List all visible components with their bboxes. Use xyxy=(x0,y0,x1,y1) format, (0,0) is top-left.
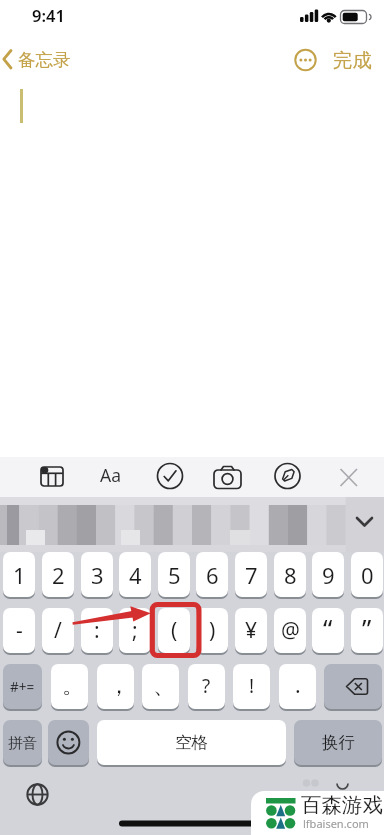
staticText: 空格 xyxy=(175,732,208,753)
staticText: “ xyxy=(323,610,333,645)
staticText: ; xyxy=(132,616,138,645)
button[interactable]: ¥ xyxy=(235,608,267,653)
button[interactable]: “ xyxy=(312,608,344,653)
staticText: 4 xyxy=(129,560,142,590)
staticText: - xyxy=(16,616,23,645)
staticText: @ xyxy=(281,616,300,645)
staticText: 百森游戏 xyxy=(301,792,383,818)
button[interactable] xyxy=(326,774,368,816)
staticText: : xyxy=(94,616,100,645)
staticText: 5 xyxy=(168,560,181,590)
button[interactable] xyxy=(148,457,192,497)
staticText: #+= xyxy=(10,678,35,696)
button[interactable] xyxy=(326,44,384,74)
button[interactable]: ; xyxy=(119,608,151,653)
staticText: ? xyxy=(202,673,211,699)
button[interactable] xyxy=(326,457,370,497)
button[interactable]: 3 xyxy=(81,552,113,597)
button[interactable]: 8 xyxy=(274,552,306,597)
button[interactable]: 拼音 xyxy=(3,720,42,765)
button[interactable]: 4 xyxy=(119,552,151,597)
staticText: 换行 xyxy=(322,732,355,753)
staticText: 拼音 xyxy=(8,734,37,752)
staticText: 。 xyxy=(62,672,84,700)
staticText: 3 xyxy=(91,560,104,590)
button[interactable]: ! xyxy=(233,664,270,709)
button[interactable]: 2 xyxy=(42,552,74,597)
button[interactable]: 空格 xyxy=(97,720,286,765)
staticText: 2 xyxy=(52,560,65,590)
staticText: / xyxy=(54,616,62,645)
button[interactable]: 0 xyxy=(351,552,383,597)
staticText: 7 xyxy=(245,560,258,590)
button[interactable] xyxy=(205,457,249,497)
button[interactable]: 。 xyxy=(51,664,88,709)
button[interactable]: ， xyxy=(97,664,134,709)
button[interactable] xyxy=(16,774,58,816)
button[interactable] xyxy=(48,720,89,765)
button[interactable] xyxy=(324,664,382,709)
button[interactable] xyxy=(265,457,309,497)
staticText: 9 xyxy=(322,560,335,590)
staticText: 6 xyxy=(206,560,219,590)
button[interactable] xyxy=(348,505,384,545)
button[interactable]: - xyxy=(3,608,35,653)
button[interactable]: 6 xyxy=(196,552,228,597)
staticText: lfbaisen.com xyxy=(303,816,369,831)
staticText: ¥ xyxy=(245,616,258,645)
button[interactable]: 1 xyxy=(3,552,35,597)
button[interactable]: 9 xyxy=(312,552,344,597)
staticText: 8 xyxy=(284,560,297,590)
staticText: 0 xyxy=(361,560,374,590)
staticText: ， xyxy=(108,672,130,700)
button[interactable]: ” xyxy=(351,608,383,653)
staticText: ) xyxy=(209,616,216,645)
button[interactable]: #+= xyxy=(3,664,42,709)
button[interactable]: @ xyxy=(274,608,306,653)
staticText: ” xyxy=(362,610,372,645)
staticText: 1 xyxy=(13,560,26,590)
button[interactable]: ) xyxy=(196,608,228,653)
staticText: Aa xyxy=(100,463,121,487)
button[interactable] xyxy=(30,457,74,497)
button[interactable]: 、 xyxy=(142,664,179,709)
button[interactable]: 换行 xyxy=(294,720,382,765)
button[interactable] xyxy=(91,457,135,497)
button[interactable]: : xyxy=(81,608,113,653)
staticText: 备忘录 xyxy=(18,49,71,71)
button[interactable]: ( xyxy=(158,608,190,653)
button[interactable]: ? xyxy=(188,664,225,709)
button[interactable]: / xyxy=(42,608,74,653)
staticText: 、 xyxy=(153,672,175,700)
button[interactable]: . xyxy=(279,664,316,709)
staticText: . xyxy=(295,671,301,700)
button[interactable] xyxy=(0,44,90,74)
button[interactable]: 7 xyxy=(235,552,267,597)
button[interactable]: 5 xyxy=(158,552,190,597)
staticText: ! xyxy=(249,673,255,699)
staticText: 完成 xyxy=(333,48,372,73)
staticText: 9:41 xyxy=(32,4,65,26)
staticText: ( xyxy=(171,616,178,645)
